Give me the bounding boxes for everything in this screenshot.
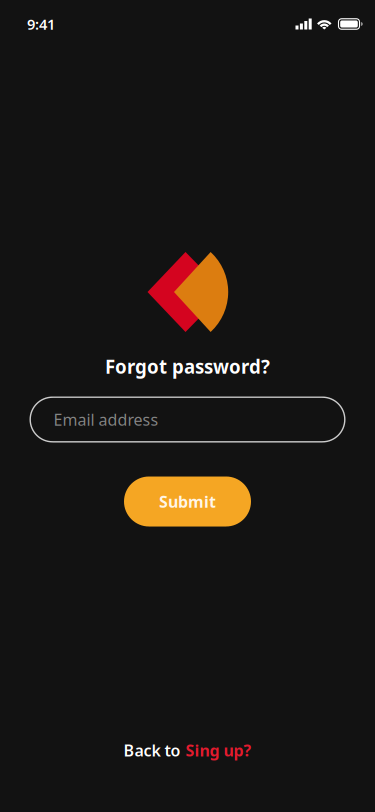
button[interactable]: Submit — [124, 476, 251, 526]
staticText: Email address — [53, 409, 158, 430]
button[interactable]: Email address — [29, 396, 345, 442]
staticText: 9:41 — [27, 14, 55, 34]
staticText: Sing up? — [185, 740, 251, 761]
staticText: Forgot password? — [105, 354, 270, 379]
staticText: Back to — [123, 740, 180, 761]
staticText: Submit — [159, 491, 216, 512]
button[interactable]: Back to — [123, 740, 251, 761]
